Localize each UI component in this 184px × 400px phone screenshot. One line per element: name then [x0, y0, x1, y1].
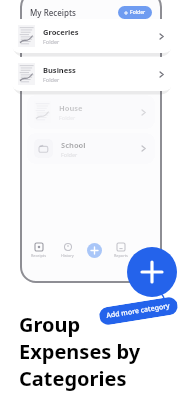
button[interactable]: Add receipt — [87, 243, 102, 258]
button[interactable]: Folder — [118, 6, 152, 19]
staticText: Group — [19, 311, 81, 338]
staticText: Reports — [114, 253, 128, 258]
staticText: School — [61, 140, 86, 150]
button[interactable]: Add more category — [98, 296, 179, 326]
button[interactable]: House — [27, 95, 155, 129]
button[interactable]: History — [59, 242, 76, 259]
staticText: Receipts — [31, 253, 46, 258]
staticText: My Receipts — [30, 7, 76, 18]
button[interactable]: Reports — [112, 242, 130, 259]
staticText: Folder — [43, 76, 60, 83]
staticText: Categories — [19, 365, 127, 392]
staticText: Add more category — [106, 301, 171, 321]
button[interactable]: Business — [11, 57, 173, 91]
staticText: Business — [43, 65, 76, 75]
staticText: History — [61, 253, 74, 258]
staticText: Folder — [61, 151, 78, 158]
staticText: Folder — [43, 38, 60, 45]
button[interactable]: Groceries — [11, 19, 173, 53]
staticText: Folder — [130, 9, 146, 16]
button[interactable]: Receipts — [29, 242, 48, 259]
staticText: Folder — [59, 114, 76, 121]
button[interactable]: Add more category — [127, 247, 177, 297]
staticText: Groceries — [43, 27, 79, 37]
staticText: House — [59, 103, 83, 113]
staticText: Expenses by — [19, 338, 141, 365]
button[interactable]: School — [27, 133, 155, 164]
